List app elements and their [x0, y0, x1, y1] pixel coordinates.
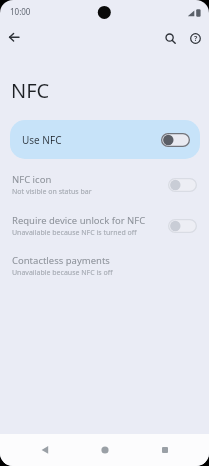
button[interactable]	[162, 30, 179, 47]
staticText: NFC	[11, 77, 50, 104]
button[interactable]: NFC icon	[0, 170, 209, 210]
staticText: Require device unlock for NFC	[12, 214, 146, 227]
staticText: 10:00	[10, 6, 31, 17]
staticText: Unavailable because NFC is off	[12, 268, 113, 278]
staticText: Use NFC	[22, 133, 62, 147]
staticText: Unavailable because NFC is turned off	[12, 228, 137, 238]
button[interactable]: Require device unlock for NFC	[0, 211, 209, 251]
button[interactable]: ?	[187, 30, 204, 47]
button[interactable]: Use NFC	[10, 120, 200, 159]
staticText: Not visible on status bar	[12, 187, 92, 197]
button[interactable]	[151, 436, 179, 464]
staticText: ?	[194, 34, 198, 44]
staticText: NFC icon	[12, 173, 52, 186]
staticText: Contactless payments	[12, 254, 110, 267]
button[interactable]	[91, 436, 119, 464]
button[interactable]	[4, 28, 24, 48]
button[interactable]	[31, 436, 59, 464]
button[interactable]: Contactless payments	[0, 251, 209, 291]
